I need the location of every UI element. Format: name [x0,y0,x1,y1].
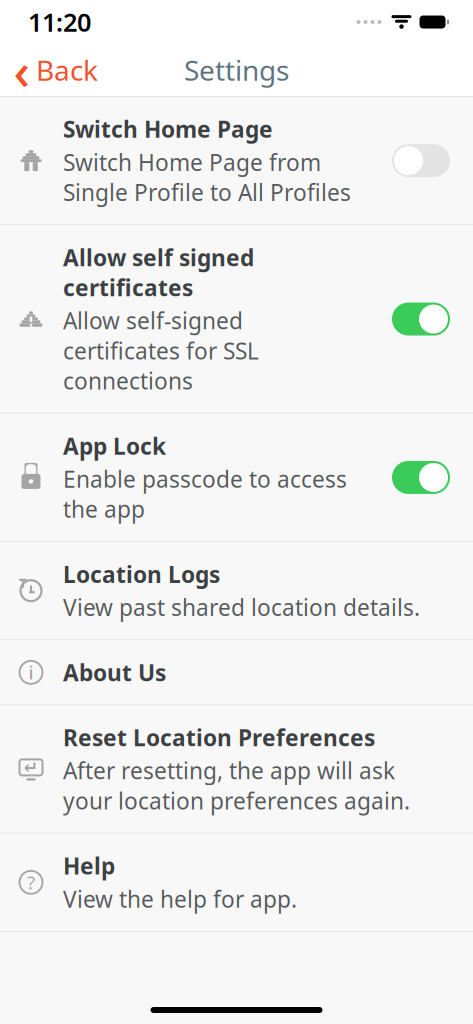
staticText: Location Logs [63,559,220,589]
staticText: App Lock [63,431,166,461]
button[interactable]: ↵ [0,705,473,833]
button[interactable]: Location Logs [0,542,473,639]
staticText: ↵ [23,757,38,777]
button[interactable]: App Lock [0,414,473,541]
button[interactable]: Switch Home Page [0,97,473,224]
staticText: ? [27,870,35,895]
button[interactable]: i [0,640,473,704]
staticText: Allow self signed certificates [63,242,254,302]
staticText: Enable passcode to access the app [63,464,347,524]
staticText: Help [63,851,115,881]
staticText: Reset Location Preferences [63,722,375,752]
staticText: Settings [184,51,289,89]
staticText: Switch Home Page [63,114,273,144]
button[interactable]: ‹ [0,45,114,95]
staticText: View the help for app. [63,884,297,914]
staticText: i [28,660,33,685]
staticText: Allow self-signed certificates for SSL c… [63,305,259,396]
staticText: ‹ [13,36,30,104]
staticText: Switch Home Page from Single Profile to … [63,147,351,207]
button[interactable]: Allow self signed certificates [0,225,473,413]
staticText: View past shared location details. [63,592,420,622]
staticText: After resetting, the app will ask your l… [63,755,410,816]
staticText: Back [36,51,98,89]
staticText: About Us [63,657,166,687]
staticText: 11:20 [28,5,91,39]
button[interactable]: ? [0,834,473,931]
